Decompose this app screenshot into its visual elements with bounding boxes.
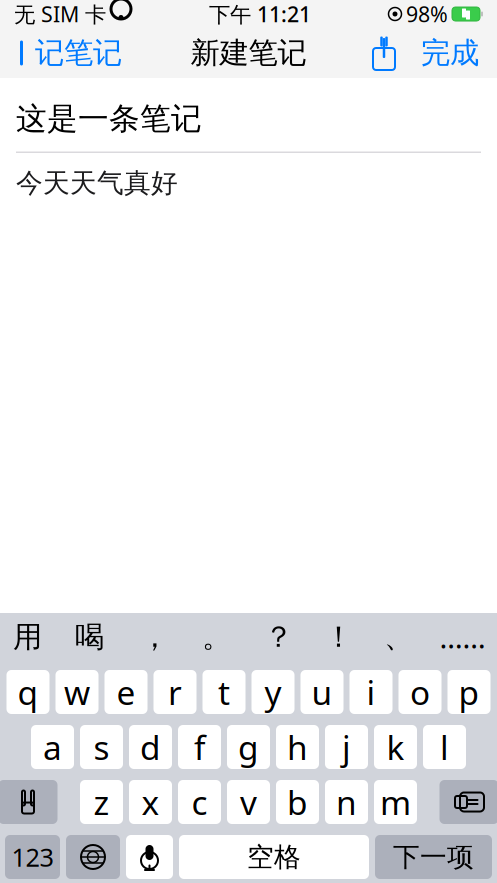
button[interactable]: ？ [247, 613, 309, 661]
button[interactable]: Shift [0, 780, 57, 824]
button[interactable]: n [325, 780, 368, 824]
staticText: l [440, 725, 449, 769]
button[interactable]: m [374, 780, 417, 824]
button[interactable]: u [300, 670, 343, 714]
staticText: ！ [324, 619, 353, 655]
button[interactable]: v [227, 780, 270, 824]
staticText: g [238, 725, 259, 769]
staticText: i [366, 670, 375, 714]
button[interactable]: i [349, 670, 392, 714]
button[interactable]: 喝 [55, 613, 123, 661]
staticText: m [380, 780, 411, 824]
staticText: c [191, 780, 207, 824]
button[interactable]: 切换键盘 [66, 835, 120, 879]
button[interactable]: a [31, 725, 74, 769]
button[interactable]: 123 [5, 835, 60, 879]
staticText: x [141, 780, 159, 824]
button[interactable]: r [153, 670, 196, 714]
staticText: w [64, 670, 90, 714]
staticText: 今天天气真好 [16, 167, 178, 199]
staticText: u [311, 670, 332, 714]
staticText: 下一项 [393, 841, 474, 873]
staticText: 98% [406, 0, 448, 28]
staticText: t [218, 670, 230, 714]
staticText: o [410, 670, 430, 714]
button[interactable]: g [227, 725, 270, 769]
button[interactable]: o [398, 670, 441, 714]
staticText: 记笔记 [35, 35, 122, 71]
button[interactable]: b [276, 780, 319, 824]
button[interactable]: 用 [0, 613, 55, 661]
staticText [106, 3, 110, 25]
button[interactable]: w [55, 670, 98, 714]
button[interactable]: 语音输入 [126, 835, 173, 879]
button[interactable]: ， [123, 613, 185, 661]
staticText: s [93, 725, 109, 769]
button[interactable]: h [276, 725, 319, 769]
staticText: 完成 [421, 35, 479, 71]
staticText: 下午 11:21 [209, 0, 311, 28]
staticText: h [287, 725, 308, 769]
staticText: ？ [264, 619, 293, 655]
button[interactable]: 、 [367, 613, 429, 661]
staticText: …… [439, 617, 485, 656]
staticText: f [194, 725, 205, 769]
button[interactable]: 记笔记 [6, 29, 132, 77]
staticText: y [264, 670, 281, 714]
button[interactable]: z [80, 780, 123, 824]
button[interactable]: 分享 [359, 29, 409, 77]
staticText: 。 [202, 619, 231, 655]
staticText: 无 SIM 卡 [14, 0, 106, 28]
button[interactable]: c [178, 780, 221, 824]
staticText: q [17, 670, 38, 714]
staticText: j [342, 725, 351, 769]
button[interactable]: l [423, 725, 466, 769]
staticText: b [287, 780, 308, 824]
button[interactable]: y [251, 670, 294, 714]
button[interactable]: k [374, 725, 417, 769]
staticText: k [386, 725, 404, 769]
button[interactable]: 完成 [409, 29, 491, 77]
button[interactable]: e [104, 670, 147, 714]
staticText: n [336, 780, 357, 824]
button[interactable]: 删除 [439, 780, 497, 824]
staticText: 喝 [75, 619, 104, 655]
button[interactable]: …… [429, 613, 495, 661]
button[interactable]: x [129, 780, 172, 824]
staticText: 这是一条笔记 [16, 100, 202, 138]
button[interactable]: f [178, 725, 221, 769]
staticText: p [458, 670, 479, 714]
staticText: d [140, 725, 161, 769]
button[interactable]: p [447, 670, 490, 714]
staticText: 123 [11, 840, 53, 874]
staticText: 新建笔记 [190, 35, 306, 71]
staticText: 空格 [247, 841, 301, 873]
staticText: ， [140, 619, 169, 655]
button[interactable]: 下一项 [375, 835, 492, 879]
staticText: z [93, 780, 109, 824]
button[interactable]: t [202, 670, 245, 714]
button[interactable]: d [129, 725, 172, 769]
staticText: a [43, 725, 62, 769]
staticText: e [116, 670, 135, 714]
staticText: 用 [13, 619, 42, 655]
button[interactable]: 。 [185, 613, 247, 661]
staticText: v [240, 780, 257, 824]
button[interactable]: 空格 [179, 835, 369, 879]
staticText: 、 [384, 619, 413, 655]
button[interactable]: j [325, 725, 368, 769]
button[interactable]: ！ [309, 613, 367, 661]
button[interactable]: q [6, 670, 49, 714]
button[interactable]: s [80, 725, 123, 769]
staticText: r [168, 670, 182, 714]
